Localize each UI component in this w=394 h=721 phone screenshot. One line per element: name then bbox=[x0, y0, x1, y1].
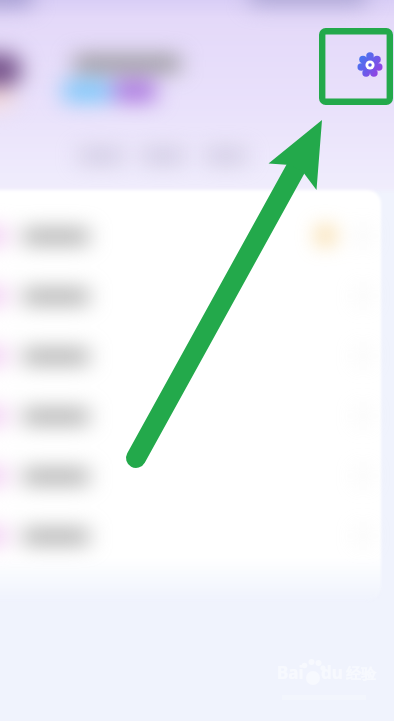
button[interactable]: Settings bbox=[319, 28, 393, 105]
staticText: 经验 bbox=[346, 665, 376, 684]
staticText: du bbox=[321, 661, 343, 684]
staticText: Bai bbox=[277, 661, 304, 684]
